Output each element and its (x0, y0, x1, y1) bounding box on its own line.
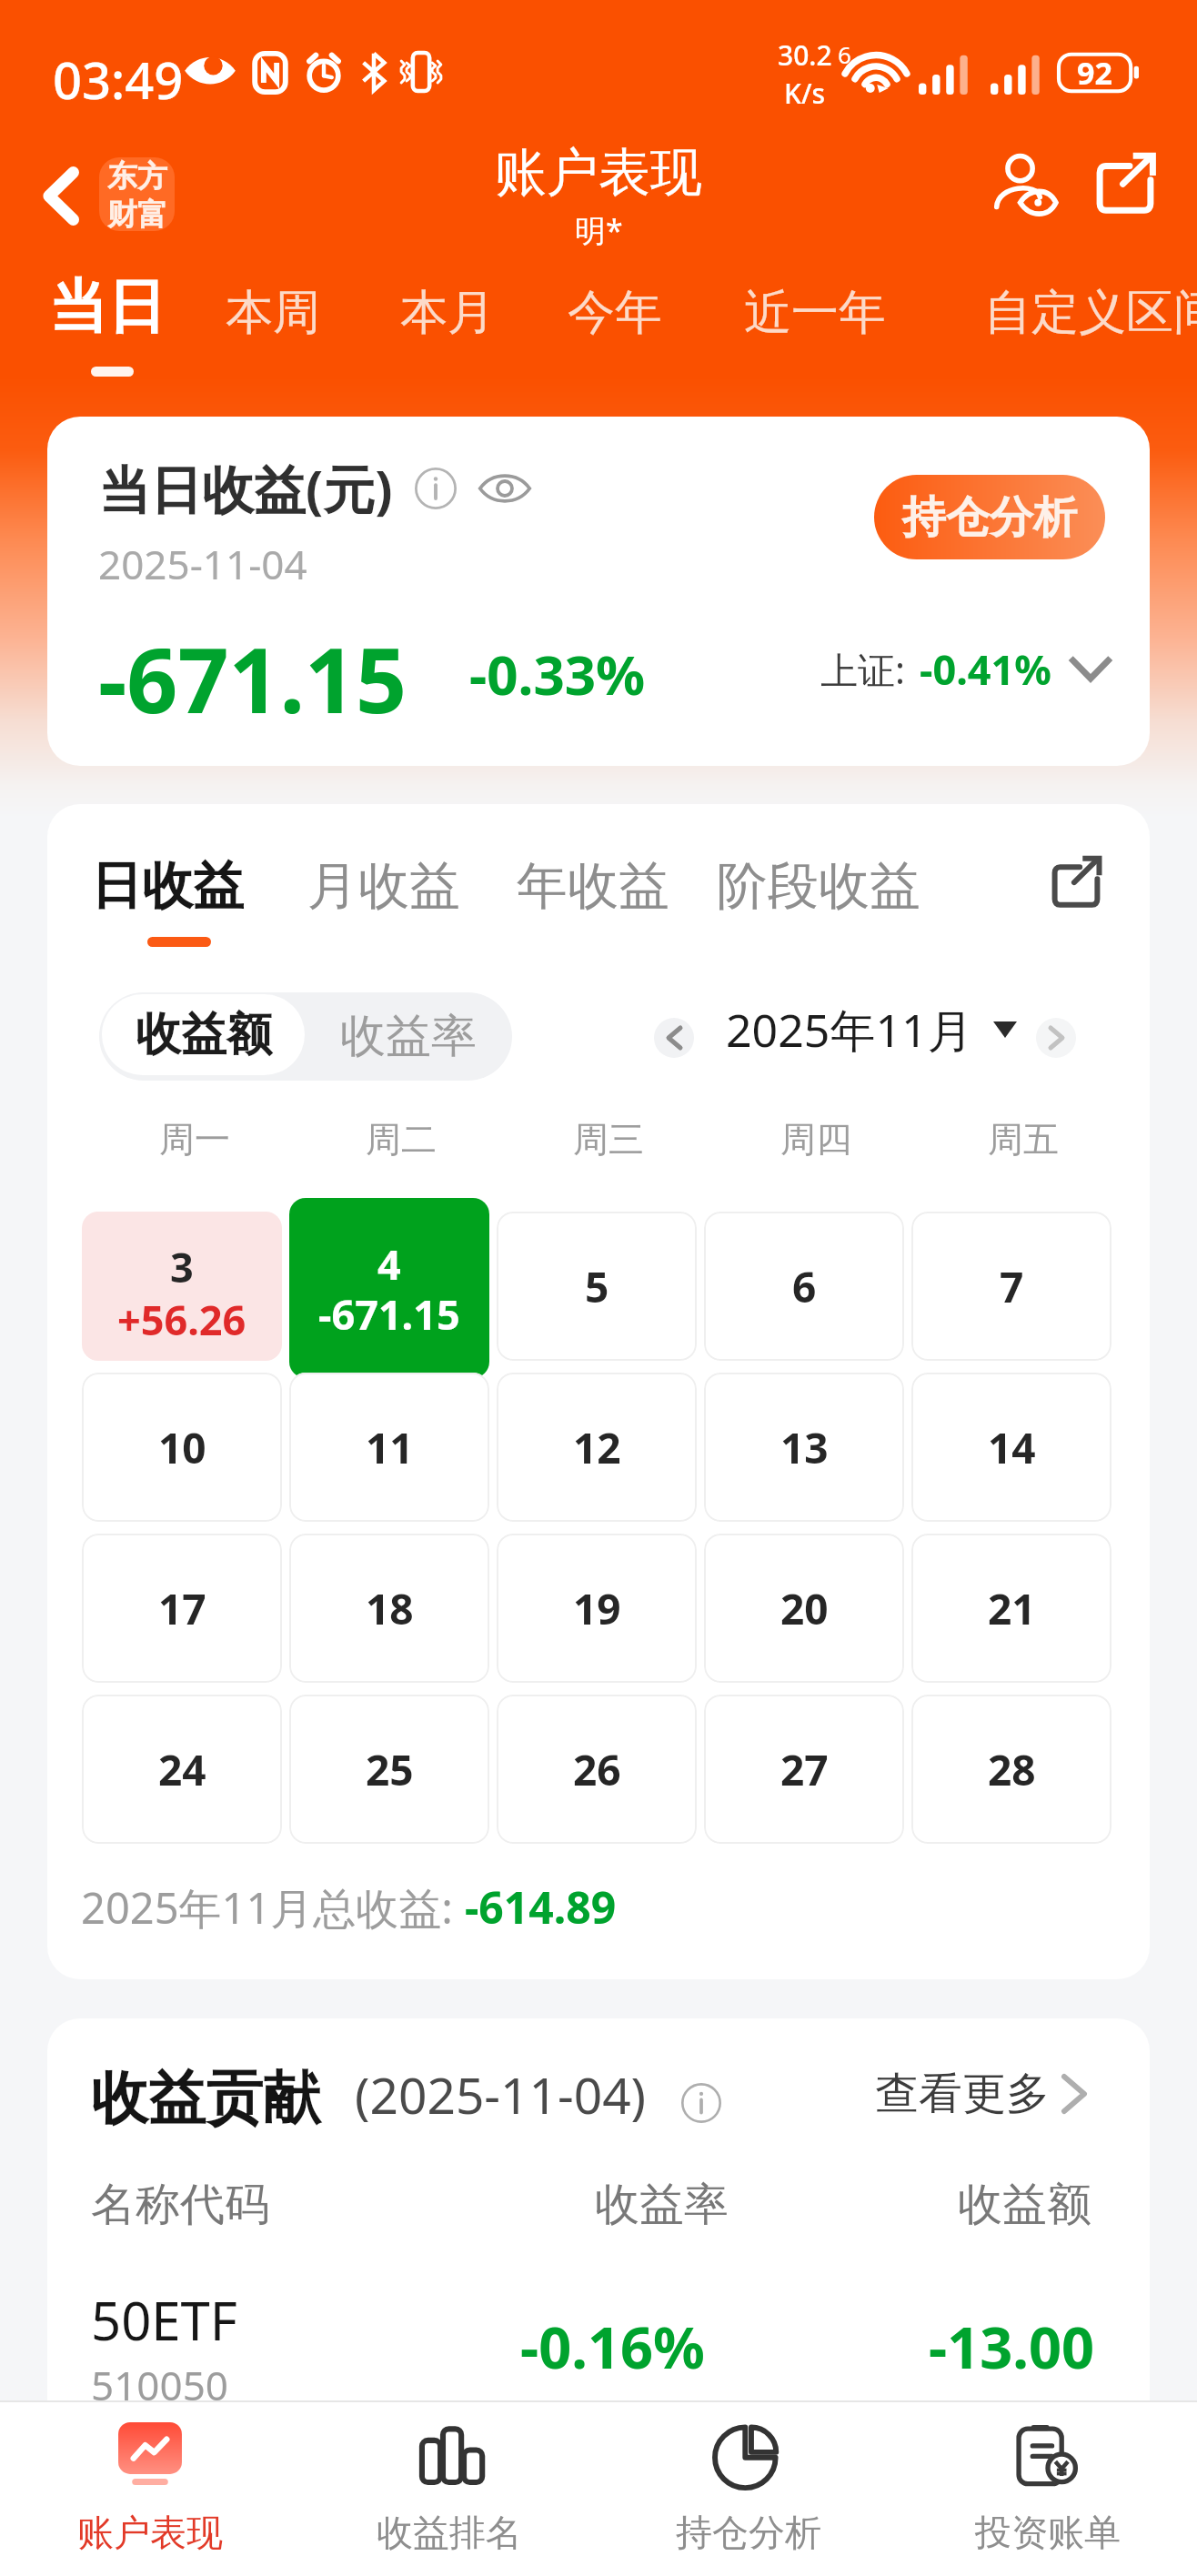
button[interactable]: Back (25, 160, 96, 231)
staticText: 周四 (780, 1117, 851, 1162)
button[interactable]: 50ETF (47, 2271, 1150, 2390)
button[interactable]: Share (1088, 146, 1162, 220)
button[interactable]: Previous month (654, 1018, 694, 1058)
staticText: 5 (585, 1258, 609, 1315)
staticText: 年收益 (517, 854, 669, 919)
staticText: 自定义区间 (984, 283, 1197, 343)
button[interactable]: Share (1052, 856, 1100, 907)
button[interactable]: 25 (289, 1695, 489, 1844)
button[interactable]: 投资账单 (898, 2402, 1197, 2555)
button[interactable]: 28 (911, 1695, 1111, 1844)
button[interactable]: 收益排名 (299, 2402, 598, 2555)
staticText: 10 (158, 1419, 206, 1476)
button[interactable]: 上证: (820, 641, 1110, 697)
button[interactable]: 月收益 (307, 854, 460, 919)
staticText: 周二 (366, 1117, 437, 1162)
button[interactable]: 10 (82, 1373, 282, 1522)
staticText: 周一 (159, 1117, 230, 1162)
staticText: 本周 (226, 283, 320, 343)
button[interactable]: 7 (911, 1212, 1111, 1361)
staticText: 25 (366, 1741, 414, 1798)
staticText: 近一年 (744, 283, 886, 343)
button[interactable]: 21 (911, 1534, 1111, 1683)
staticText: 2025年11月总收益: (81, 1878, 465, 1937)
staticText: 查看更多 (875, 2067, 1050, 2121)
button[interactable]: 账户表现 (0, 2402, 299, 2555)
staticText: 日收益 (91, 854, 244, 919)
button[interactable]: 5 (497, 1212, 697, 1361)
staticText: 14 (988, 1419, 1036, 1476)
button[interactable]: Next month (1036, 1018, 1076, 1058)
button[interactable]: 26 (497, 1695, 697, 1844)
button[interactable]: 6 (704, 1212, 904, 1361)
staticText: 持仓分析 (676, 2510, 821, 2555)
staticText: 收益率 (595, 2177, 729, 2233)
button[interactable]: 查看更多 (875, 2067, 1084, 2121)
staticText: 21 (988, 1580, 1036, 1637)
staticText: 18 (366, 1580, 414, 1637)
button[interactable]: Info (415, 468, 457, 509)
button[interactable]: 收益率 (305, 992, 512, 1081)
staticText: 2025年11月 (726, 999, 973, 1061)
button[interactable]: 27 (704, 1695, 904, 1844)
staticText: 收益额 (958, 2177, 1091, 2233)
staticText: 19 (573, 1580, 621, 1637)
staticText: 收益额 (136, 1006, 272, 1063)
staticText: 11 (366, 1419, 414, 1476)
staticText: -614.89 (465, 1877, 617, 1937)
staticText: 6 (838, 38, 851, 70)
button[interactable]: 自定义区间 (984, 283, 1197, 343)
button[interactable]: 17 (82, 1534, 282, 1683)
staticText: 24 (158, 1741, 206, 1798)
staticText: 收益排名 (377, 2510, 522, 2555)
button[interactable]: 14 (911, 1373, 1111, 1522)
button[interactable]: 本月 (400, 283, 495, 343)
button[interactable]: 收益贡献 (91, 2062, 690, 2134)
button[interactable]: 近一年 (744, 283, 886, 343)
button[interactable]: 3 (82, 1212, 282, 1361)
staticText: 上证: (820, 644, 905, 695)
staticText: 周三 (573, 1117, 644, 1162)
button[interactable]: 当日 (49, 270, 166, 377)
button[interactable]: 18 (289, 1534, 489, 1683)
staticText: 2025-11-04 (98, 537, 307, 591)
staticText: 20 (780, 1580, 829, 1637)
button[interactable]: 阶段收益 (717, 854, 920, 919)
staticText: 东方 (107, 157, 167, 196)
staticText: 持仓分析 (902, 490, 1077, 545)
staticText: 账户表现 (77, 2510, 223, 2555)
staticText: -0.16% (520, 2308, 705, 2386)
staticText: -671.15 (98, 618, 407, 739)
staticText: 510050 (91, 2358, 229, 2402)
button[interactable]: Toggle visibility (478, 470, 531, 507)
staticText: 收益率 (340, 1008, 477, 1065)
button[interactable]: 持仓分析 (874, 475, 1105, 559)
staticText: -13.00 (929, 2308, 1095, 2386)
button[interactable]: 4 (289, 1198, 489, 1378)
button[interactable]: 12 (497, 1373, 697, 1522)
button[interactable]: 19 (497, 1534, 697, 1683)
staticText: -0.41% (920, 641, 1051, 697)
button[interactable]: 本周 (226, 283, 320, 343)
button[interactable]: 今年 (568, 283, 662, 343)
button[interactable]: 20 (704, 1534, 904, 1683)
staticText: 50ETF (91, 2284, 237, 2356)
staticText: 13 (780, 1419, 829, 1476)
staticText: 6 (792, 1258, 817, 1315)
button[interactable]: 2025年11月 (726, 999, 1017, 1061)
button[interactable]: 持仓分析 (598, 2402, 898, 2555)
button[interactable]: 11 (289, 1373, 489, 1522)
button[interactable]: 年收益 (517, 854, 669, 919)
button[interactable]: 收益额 (102, 994, 305, 1075)
staticText: 周五 (988, 1117, 1059, 1162)
staticText: 17 (158, 1580, 206, 1637)
staticText: 30.2 (778, 36, 832, 74)
button[interactable]: 13 (704, 1373, 904, 1522)
button[interactable]: Info (681, 2083, 721, 2123)
staticText: 阶段收益 (717, 854, 920, 919)
button[interactable]: Account (988, 146, 1062, 220)
button[interactable]: 24 (82, 1695, 282, 1844)
button[interactable]: 日收益 (91, 854, 244, 947)
button[interactable]: East Money (99, 157, 175, 231)
staticText: 名称代码 (91, 2177, 269, 2233)
